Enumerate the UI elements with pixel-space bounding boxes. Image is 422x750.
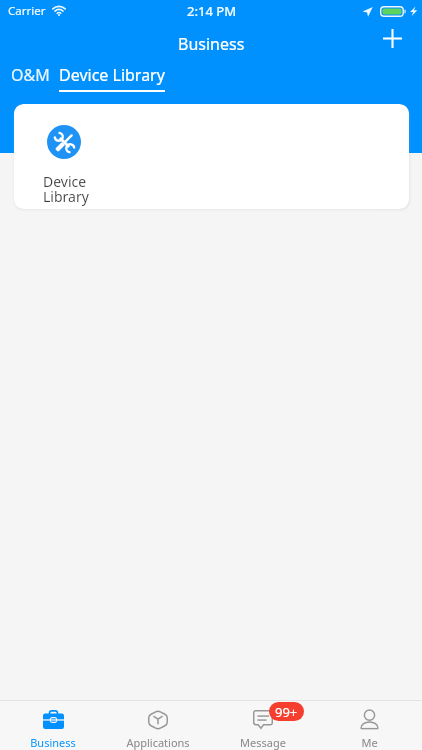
staticText: Message — [240, 735, 286, 750]
staticText: Carrier — [8, 3, 46, 19]
staticText: Me — [361, 735, 378, 750]
staticText: Business — [30, 735, 76, 750]
button[interactable]: Me — [316, 701, 422, 750]
staticText: Device Library — [59, 64, 165, 86]
staticText: Applications — [126, 735, 190, 750]
staticText: O&M — [11, 64, 50, 86]
button[interactable]: 99+ — [210, 701, 316, 750]
staticText: Device Library — [43, 172, 89, 206]
staticText: Business — [178, 33, 245, 55]
button[interactable]: Device Library — [35, 114, 101, 200]
button[interactable]: Device Library — [55, 64, 179, 92]
button[interactable]: Add — [371, 17, 413, 59]
button[interactable]: Applications — [105, 701, 210, 750]
staticText: 2:14 PM — [187, 2, 237, 20]
button[interactable]: O&M — [0, 64, 55, 92]
button[interactable]: Business — [0, 701, 105, 750]
staticText: 99+ — [275, 703, 298, 721]
